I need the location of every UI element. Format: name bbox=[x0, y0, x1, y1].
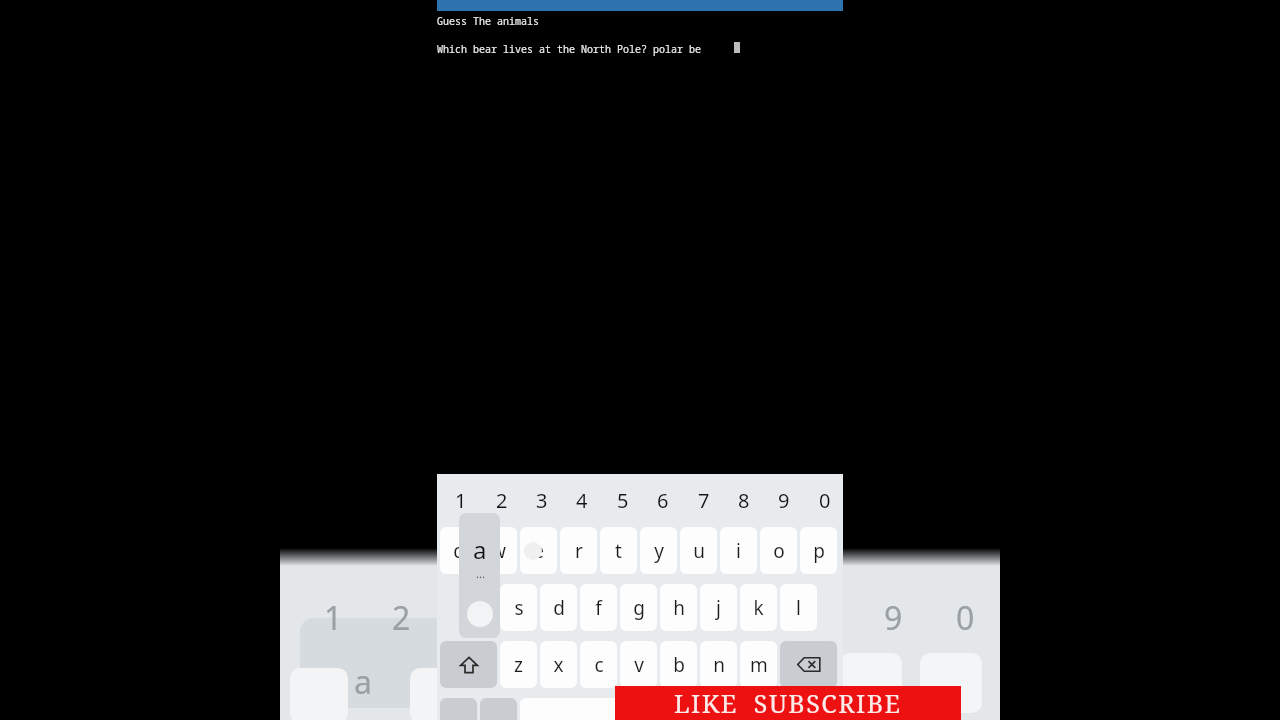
button[interactable] bbox=[723, 698, 760, 720]
button[interactable]: 1 bbox=[442, 486, 480, 514]
staticText: y bbox=[654, 538, 664, 564]
button[interactable] bbox=[520, 698, 720, 720]
staticText: 4 bbox=[576, 487, 588, 514]
staticText: 7 bbox=[698, 487, 710, 514]
button[interactable]: i bbox=[720, 527, 757, 574]
button[interactable]: f bbox=[580, 584, 617, 631]
button[interactable]: 5 bbox=[604, 486, 642, 514]
button[interactable]: b bbox=[660, 641, 697, 688]
staticText: p bbox=[813, 538, 825, 564]
button[interactable] bbox=[480, 698, 517, 720]
button[interactable]: LIKE SUBSCRIBE bbox=[615, 686, 961, 720]
button[interactable]: 6 bbox=[644, 486, 682, 514]
staticText: j bbox=[716, 595, 721, 621]
button[interactable]: c bbox=[580, 641, 617, 688]
button[interactable]: e bbox=[520, 527, 557, 574]
staticText: ... bbox=[476, 566, 485, 581]
button[interactable] bbox=[763, 698, 800, 720]
button[interactable]: x bbox=[540, 641, 577, 688]
button[interactable]: 4 bbox=[563, 486, 601, 514]
staticText: 6 bbox=[657, 487, 669, 514]
staticText: l bbox=[796, 595, 801, 621]
button[interactable]: a bbox=[459, 513, 500, 638]
staticText: m bbox=[750, 652, 768, 678]
button[interactable]: a bbox=[460, 584, 497, 631]
button[interactable]: v bbox=[620, 641, 657, 688]
button[interactable]: z bbox=[500, 641, 537, 688]
staticText: v bbox=[634, 652, 644, 678]
staticText: i bbox=[736, 538, 741, 564]
staticText: b bbox=[673, 652, 685, 678]
staticText: 8 bbox=[738, 487, 750, 514]
button[interactable]: 7 bbox=[685, 486, 723, 514]
staticText: 1 bbox=[324, 596, 343, 636]
staticText: 9 bbox=[778, 487, 790, 514]
button[interactable]: 9 bbox=[765, 486, 803, 514]
staticText: 5 bbox=[617, 487, 629, 514]
button[interactable]: q bbox=[440, 527, 477, 574]
staticText: f bbox=[595, 595, 602, 621]
button[interactable]: t bbox=[600, 527, 637, 574]
button[interactable]: w bbox=[480, 527, 517, 574]
staticText: r bbox=[575, 538, 583, 564]
staticText: 3 bbox=[536, 487, 548, 514]
staticText: 0 bbox=[956, 596, 975, 636]
button[interactable]: Backspace bbox=[780, 641, 837, 688]
button[interactable]: h bbox=[660, 584, 697, 631]
staticText: a bbox=[473, 533, 487, 566]
staticText: n bbox=[713, 652, 725, 678]
staticText: x bbox=[553, 652, 564, 678]
button[interactable]: s bbox=[500, 584, 537, 631]
staticText: d bbox=[553, 595, 565, 621]
button[interactable]: l bbox=[780, 584, 817, 631]
staticText: o bbox=[773, 538, 785, 564]
staticText: 9 bbox=[884, 596, 903, 636]
staticText: 1 bbox=[455, 487, 467, 514]
staticText: a bbox=[473, 595, 484, 621]
button[interactable] bbox=[440, 698, 477, 720]
button[interactable]: k bbox=[740, 584, 777, 631]
staticText: LIKE SUBSCRIBE bbox=[674, 686, 902, 720]
button[interactable]: p bbox=[800, 527, 837, 574]
staticText: t bbox=[615, 538, 622, 564]
staticText: e bbox=[533, 538, 544, 564]
staticText: 2 bbox=[496, 487, 508, 514]
button[interactable]: u bbox=[680, 527, 717, 574]
button[interactable]: j bbox=[700, 584, 737, 631]
button[interactable]: o bbox=[760, 527, 797, 574]
button[interactable]: r bbox=[560, 527, 597, 574]
staticText: 0 bbox=[819, 487, 831, 514]
button[interactable]: 0 bbox=[806, 486, 844, 514]
staticText: a bbox=[354, 660, 372, 700]
button[interactable]: g bbox=[620, 584, 657, 631]
staticText: c bbox=[594, 652, 604, 678]
staticText: w bbox=[491, 538, 506, 564]
staticText: u bbox=[693, 538, 705, 564]
button[interactable]: 8 bbox=[725, 486, 763, 514]
button[interactable]: Shift bbox=[440, 641, 497, 688]
staticText: s bbox=[514, 595, 524, 621]
button[interactable]: 2 bbox=[483, 486, 521, 514]
staticText: q bbox=[453, 538, 465, 564]
staticText: Guess The animals bbox=[437, 14, 539, 28]
staticText: 2 bbox=[392, 596, 411, 636]
button[interactable]: d bbox=[540, 584, 577, 631]
staticText: g bbox=[633, 595, 645, 621]
staticText: Which bear lives at the North Pole? pola… bbox=[437, 42, 701, 56]
button[interactable]: 3 bbox=[523, 486, 561, 514]
staticText: z bbox=[514, 652, 523, 678]
button[interactable]: n bbox=[700, 641, 737, 688]
staticText: h bbox=[673, 595, 685, 621]
staticText: k bbox=[753, 595, 764, 621]
button[interactable]: y bbox=[640, 527, 677, 574]
button[interactable]: m bbox=[740, 641, 777, 688]
